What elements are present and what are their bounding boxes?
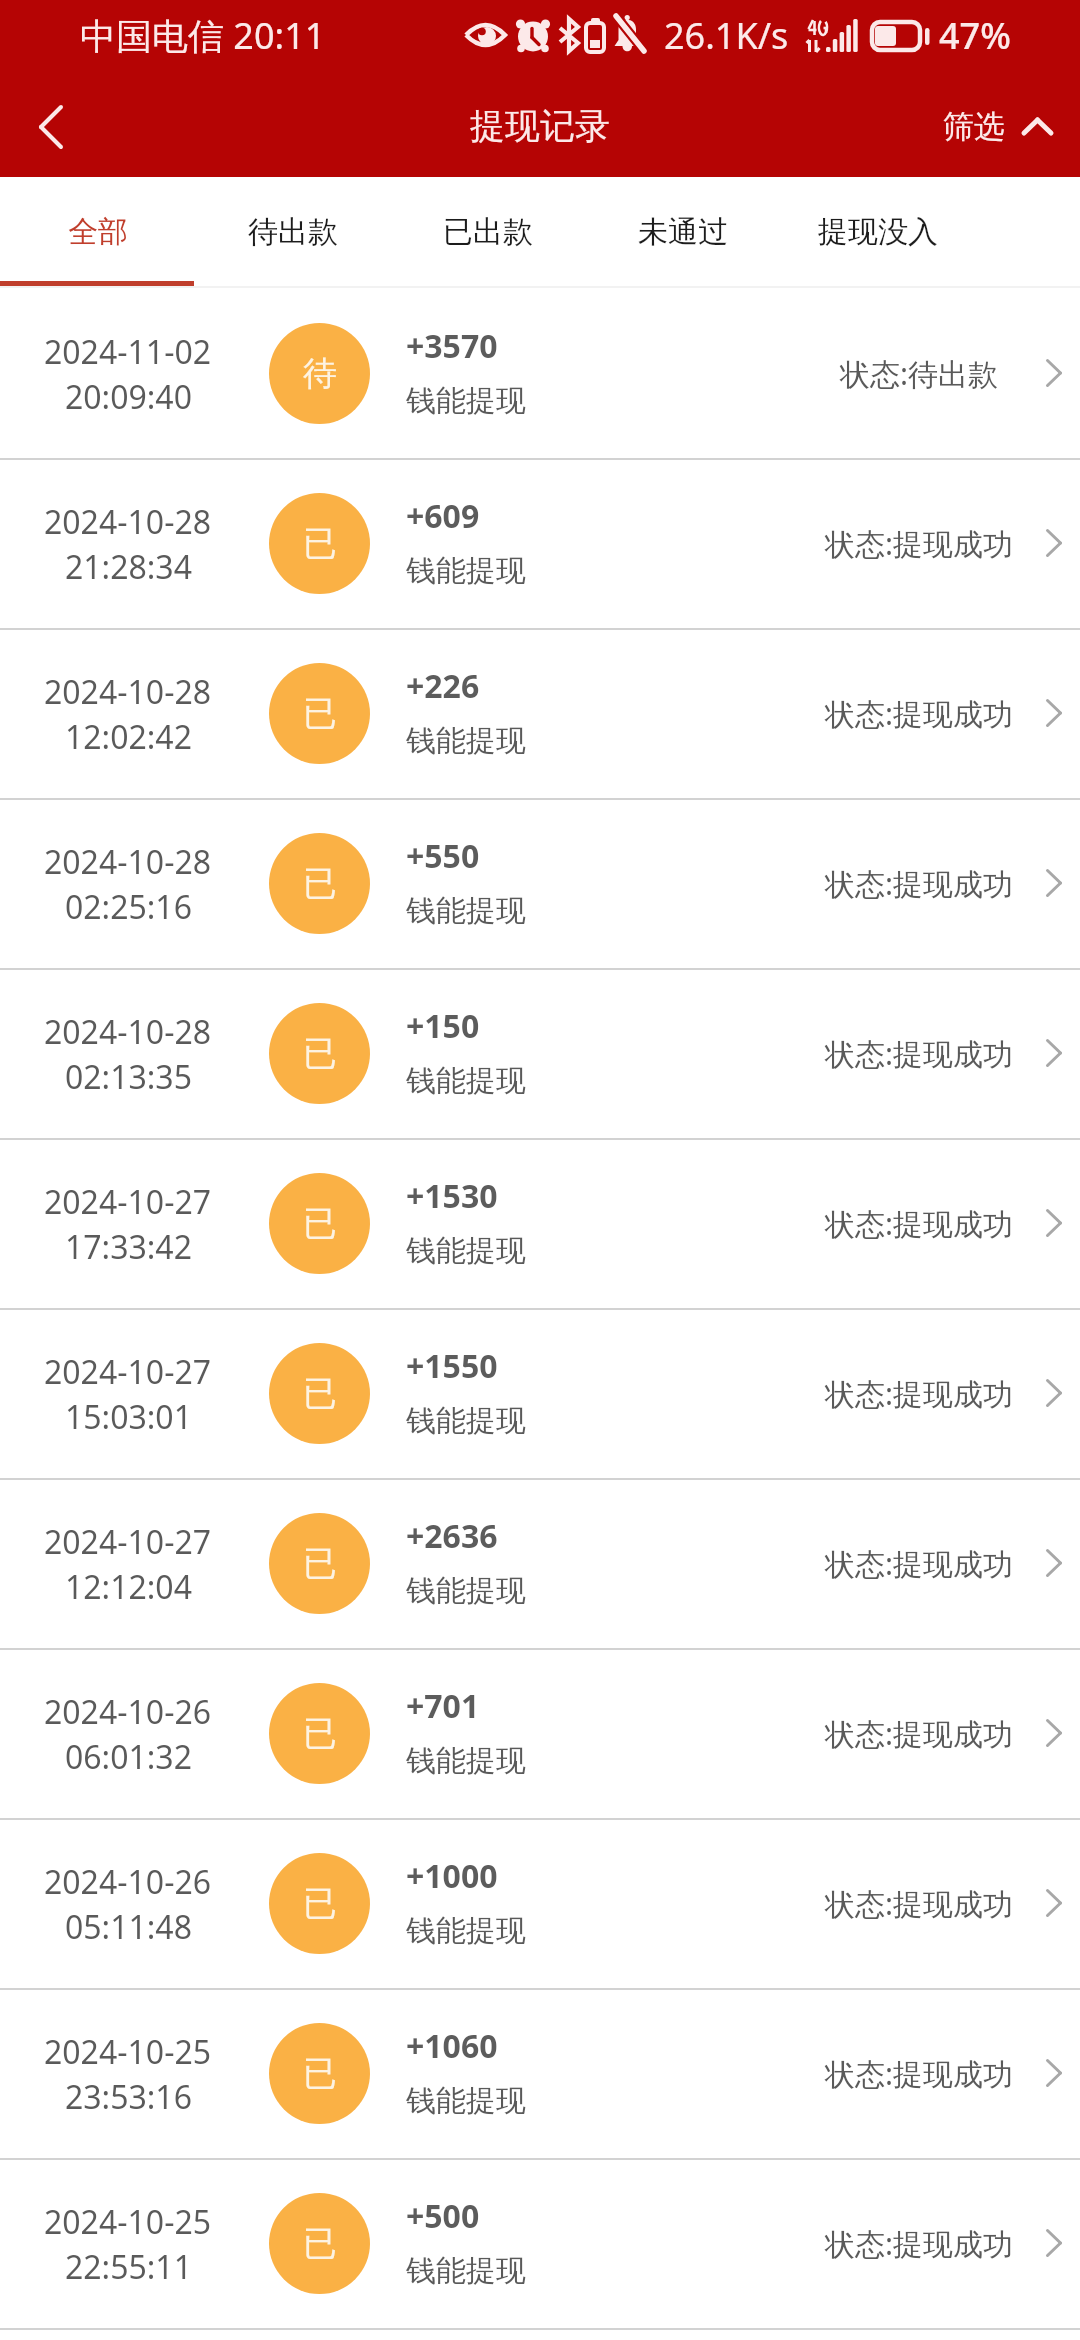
button[interactable]: 2024-10-27 — [0, 1310, 1080, 1480]
button[interactable]: 2024-10-26 — [0, 1820, 1080, 1990]
staticText: 状态:提现成功 — [825, 2053, 1014, 2094]
staticText: 待出款 — [248, 213, 338, 251]
staticText: 20:09:40 — [65, 375, 192, 419]
staticText: 17:33:42 — [65, 1225, 192, 1269]
staticText: 全部 — [68, 213, 128, 251]
staticText: 提现记录 — [470, 104, 610, 148]
staticText: +701 — [406, 1684, 480, 1728]
staticText: 钱能提现 — [406, 552, 526, 590]
staticText: 2024-10-28 — [44, 840, 212, 884]
staticText: +550 — [406, 834, 480, 878]
staticText: 状态:提现成功 — [825, 693, 1014, 734]
staticText: 2024-10-26 — [44, 1690, 212, 1734]
staticText: 提现没入 — [818, 213, 938, 251]
staticText: 已 — [303, 1372, 337, 1415]
staticText: 47% — [939, 11, 1011, 60]
staticText: +2636 — [406, 1514, 498, 1558]
staticText: +1550 — [406, 1344, 498, 1388]
staticText: 已 — [303, 1712, 337, 1755]
staticText: 钱能提现 — [406, 2252, 526, 2290]
staticText: 21:28:34 — [65, 545, 192, 589]
staticText: 已出款 — [443, 213, 533, 251]
staticText: 未通过 — [638, 213, 728, 251]
staticText: 2024-10-27 — [44, 1350, 212, 1394]
staticText: 2024-10-26 — [44, 1860, 212, 1904]
button[interactable]: 待出款 — [195, 177, 390, 290]
staticText: 已 — [303, 2052, 337, 2095]
staticText: 状态:待出款 — [840, 353, 999, 394]
staticText: 状态:提现成功 — [825, 1203, 1014, 1244]
staticText: 22:55:11 — [65, 2245, 192, 2289]
staticText: 2024-10-27 — [44, 1180, 212, 1224]
staticText: 状态:提现成功 — [825, 1543, 1014, 1584]
staticText: 已 — [303, 2222, 337, 2265]
staticText: 钱能提现 — [406, 1402, 526, 1440]
staticText: 12:02:42 — [65, 715, 192, 759]
staticText: 已 — [303, 1542, 337, 1585]
button[interactable]: 2024-10-26 — [0, 1650, 1080, 1820]
button[interactable]: Back — [0, 80, 100, 177]
staticText: 2024-10-25 — [44, 2200, 212, 2244]
button[interactable]: 筛选 — [923, 80, 1080, 177]
staticText: 状态:提现成功 — [825, 1883, 1014, 1924]
staticText: 待 — [303, 352, 337, 395]
button[interactable]: 2024-10-25 — [0, 1990, 1080, 2160]
staticText: 26.1K/s — [664, 11, 789, 60]
staticText: 钱能提现 — [406, 722, 526, 760]
staticText: 2024-11-02 — [44, 330, 212, 374]
staticText: 已 — [303, 1882, 337, 1925]
staticText: +226 — [406, 664, 480, 708]
staticText: 状态:提现成功 — [825, 1373, 1014, 1414]
staticText: 状态:提现成功 — [825, 1713, 1014, 1754]
staticText: 12:12:04 — [65, 1565, 192, 1609]
staticText: 02:13:35 — [65, 1055, 192, 1099]
staticText: 2024-10-28 — [44, 500, 212, 544]
staticText: 2024-10-27 — [44, 1520, 212, 1564]
staticText: +150 — [406, 1004, 480, 1048]
button[interactable]: 2024-10-28 — [0, 630, 1080, 800]
staticText: 钱能提现 — [406, 1062, 526, 1100]
staticText: 02:25:16 — [65, 885, 192, 929]
staticText: 钱能提现 — [406, 1742, 526, 1780]
staticText: +1530 — [406, 1174, 498, 1218]
staticText: 状态:提现成功 — [825, 863, 1014, 904]
staticText: +3570 — [406, 324, 498, 368]
button[interactable]: 2024-10-28 — [0, 970, 1080, 1140]
staticText: 钱能提现 — [406, 382, 526, 420]
staticText: 已 — [303, 692, 337, 735]
button[interactable]: 2024-10-28 — [0, 460, 1080, 630]
staticText: 状态:提现成功 — [825, 1033, 1014, 1074]
staticText: 2024-10-28 — [44, 1010, 212, 1054]
button[interactable]: 2024-10-25 — [0, 2160, 1080, 2330]
staticText: +500 — [406, 2194, 480, 2238]
staticText: 钱能提现 — [406, 892, 526, 930]
staticText: 已 — [303, 1202, 337, 1245]
staticText: +1000 — [406, 1854, 498, 1898]
staticText: 状态:提现成功 — [825, 2223, 1014, 2264]
staticText: 钱能提现 — [406, 2082, 526, 2120]
staticText: +1060 — [406, 2024, 498, 2068]
staticText: 2024-10-28 — [44, 670, 212, 714]
button[interactable]: 2024-10-27 — [0, 1480, 1080, 1650]
staticText: 已 — [303, 522, 337, 565]
staticText: 中国电信 20:11 — [80, 11, 326, 60]
staticText: 2024-10-25 — [44, 2030, 212, 2074]
staticText: 15:03:01 — [65, 1395, 192, 1439]
staticText: 状态:提现成功 — [825, 523, 1014, 564]
staticText: 筛选 — [943, 107, 1005, 146]
staticText: +609 — [406, 494, 480, 538]
button[interactable]: 2024-11-02 — [0, 290, 1080, 460]
button[interactable]: 2024-10-28 — [0, 800, 1080, 970]
button[interactable]: 全部 — [0, 177, 195, 290]
staticText: 已 — [303, 862, 337, 905]
button[interactable]: 提现没入 — [780, 177, 975, 290]
button[interactable]: 已出款 — [390, 177, 585, 290]
staticText: 钱能提现 — [406, 1912, 526, 1950]
staticText: 05:11:48 — [65, 1905, 192, 1949]
staticText: 已 — [303, 1032, 337, 1075]
staticText: 23:53:16 — [65, 2075, 192, 2119]
staticText: 钱能提现 — [406, 1572, 526, 1610]
staticText: 钱能提现 — [406, 1232, 526, 1270]
button[interactable]: 2024-10-27 — [0, 1140, 1080, 1310]
button[interactable]: 未通过 — [585, 177, 780, 290]
